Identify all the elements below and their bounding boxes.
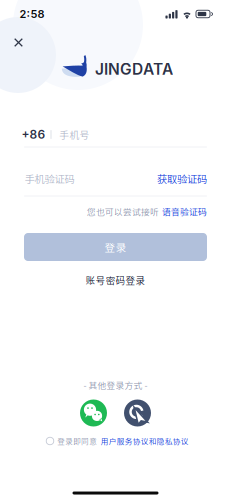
staticText: 用户服务协议和隐私协议 [101, 435, 189, 446]
button[interactable]: Jingdata login [124, 399, 151, 426]
button[interactable]: WeChat login [80, 399, 107, 426]
staticText: 获取验证码 [157, 171, 207, 186]
staticText: JINGDATA [95, 60, 173, 78]
staticText: 手机号 [59, 127, 89, 141]
button[interactable]: Close [5, 29, 31, 55]
staticText: 账号密码登录 [85, 273, 145, 287]
staticText: 您也可以尝试接听 [87, 205, 159, 218]
staticText: 手机验证码 [24, 171, 74, 186]
staticText: +86 [21, 127, 45, 142]
button[interactable]: 用户服务协议和隐私协议 [101, 435, 189, 446]
staticText: 登录即同意 [57, 435, 97, 446]
staticText: 2:58 [19, 7, 44, 21]
button[interactable]: 获取验证码 [145, 169, 207, 187]
button[interactable]: 账号密码登录 [75, 272, 155, 288]
staticText: 登录 [104, 239, 126, 255]
button[interactable]: 语音验证码 [162, 205, 207, 218]
staticText: - 其他登录方式 - [83, 379, 147, 391]
staticText: 语音验证码 [162, 205, 207, 218]
button[interactable]: 登录 [24, 233, 207, 261]
